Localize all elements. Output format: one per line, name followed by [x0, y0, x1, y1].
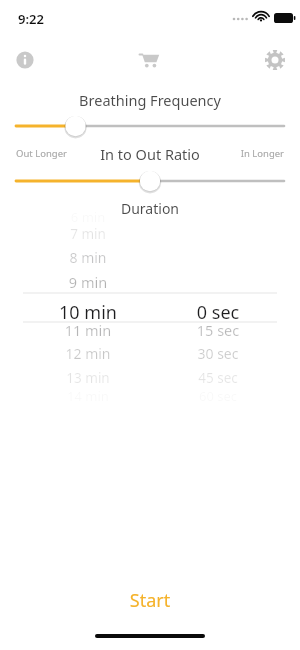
staticText: 9:22: [18, 10, 88, 28]
staticText: 12 min: [18, 344, 158, 363]
staticText: Start: [100, 588, 200, 613]
staticText: 9 min: [18, 272, 158, 292]
staticText: Out Longer: [16, 147, 96, 160]
staticText: In to Out Ratio: [0, 144, 300, 164]
button[interactable]: [0, 167, 300, 195]
button[interactable]: Settings: [260, 45, 290, 75]
staticText: 8 min: [18, 248, 158, 267]
button[interactable]: Store: [135, 45, 165, 75]
staticText: 30 sec: [148, 344, 288, 363]
staticText: 15 sec: [148, 320, 288, 340]
staticText: Breathing Frequency: [0, 90, 300, 110]
button[interactable]: [0, 112, 300, 140]
staticText: 6 min: [18, 208, 158, 226]
staticText: 11 min: [18, 320, 158, 340]
staticText: 0 sec: [148, 300, 288, 325]
staticText: 7 min: [18, 225, 158, 243]
button[interactable]: 6 min: [0, 225, 300, 380]
staticText: In Longer: [204, 147, 284, 160]
staticText: 45 sec: [148, 369, 288, 387]
button[interactable]: Start: [100, 585, 200, 615]
button[interactable]: Info: [10, 45, 40, 75]
staticText: 13 min: [18, 369, 158, 387]
staticText: Duration: [0, 199, 300, 218]
staticText: 10 min: [18, 300, 158, 325]
